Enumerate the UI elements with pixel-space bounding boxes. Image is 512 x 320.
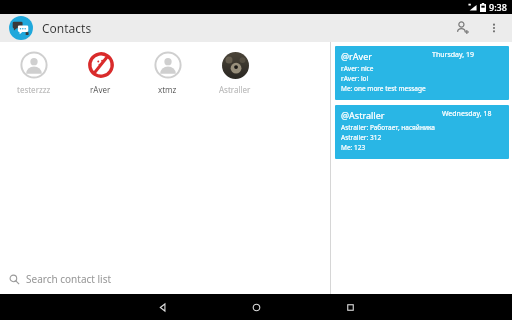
button[interactable]: rAver (67, 48, 134, 97)
button[interactable]: Back (126, 294, 198, 320)
button[interactable]: Home (220, 294, 292, 320)
button[interactable]: @rAver (335, 46, 509, 100)
staticText: Wednesday, 18 (442, 109, 492, 119)
staticText: @rAver (341, 50, 372, 62)
staticText: rAver (90, 84, 111, 95)
staticText: rAver: nice (341, 64, 374, 73)
staticText: Astraller: Работает, насяйника (341, 123, 435, 132)
staticText: Search contact list (26, 272, 112, 286)
staticText: testerzzz (17, 84, 51, 95)
staticText: Astraller: 312 (341, 133, 382, 142)
button[interactable]: Search contact list (0, 264, 330, 294)
staticText: Contacts (42, 20, 92, 36)
button[interactable]: Astraller (201, 48, 268, 97)
button[interactable]: Recent apps (314, 294, 386, 320)
button[interactable]: App logo (8, 15, 34, 41)
staticText: Astraller (219, 84, 251, 95)
button[interactable]: xtmz (134, 48, 201, 97)
staticText: Thursday, 19 (432, 50, 475, 60)
button[interactable]: More options (480, 14, 508, 42)
staticText: xtmz (158, 84, 177, 95)
button[interactable]: @Astraller (335, 105, 509, 159)
staticText: @Astraller (341, 109, 385, 121)
staticText: Me: one more test message (341, 84, 426, 93)
button[interactable]: Add contact (446, 14, 480, 42)
staticText: rAver: lol (341, 74, 369, 83)
staticText: 9:38 (489, 1, 507, 13)
staticText: Me: 123 (341, 143, 366, 152)
button[interactable]: testerzzz (0, 48, 67, 97)
